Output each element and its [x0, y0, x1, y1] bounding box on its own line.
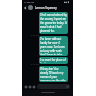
button[interactable]: I feel overwhelmed by the money I spent …	[39, 12, 68, 34]
staticText: Lemon Squeezy	[35, 6, 57, 10]
button[interactable]: Camera	[32, 85, 36, 89]
button[interactable]	[37, 84, 70, 89]
button[interactable]: Back	[23, 6, 27, 10]
staticText: 11:59 AM	[24, 1, 35, 4]
button[interactable]: I've been without family for over 4 year…	[39, 36, 68, 56]
staticText: 2:10 PM	[31, 63, 40, 66]
staticText: I so want for place of kindness	[40, 58, 67, 63]
button[interactable]: I so want for place of kindness	[39, 57, 68, 64]
staticText: 2:00 PM	[31, 34, 40, 37]
button[interactable]: Attach	[28, 85, 32, 89]
button[interactable]: Back	[22, 4, 73, 11]
button[interactable]: Emoji	[24, 85, 28, 89]
button[interactable]: If they don't be steady I'll teach my ma…	[39, 66, 68, 82]
staticText: I've been without family for over 4 year…	[40, 37, 67, 55]
staticText: ▪▪ ▮	[64, 1, 69, 4]
staticText: I feel overwhelmed by the money I spent …	[40, 13, 67, 33]
staticText: If they don't be steady I'll teach my ma…	[40, 67, 67, 81]
